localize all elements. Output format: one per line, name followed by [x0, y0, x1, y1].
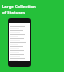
button[interactable]: [9, 29, 30, 33]
button[interactable]: [9, 57, 30, 61]
button[interactable]: [9, 45, 30, 49]
button[interactable]: [9, 33, 30, 37]
button[interactable]: [9, 37, 30, 41]
button[interactable]: [9, 53, 30, 57]
staticText: Large Collection of Statuses: [2, 4, 36, 15]
button[interactable]: [9, 49, 30, 53]
button[interactable]: [9, 25, 30, 29]
button[interactable]: [9, 41, 30, 45]
